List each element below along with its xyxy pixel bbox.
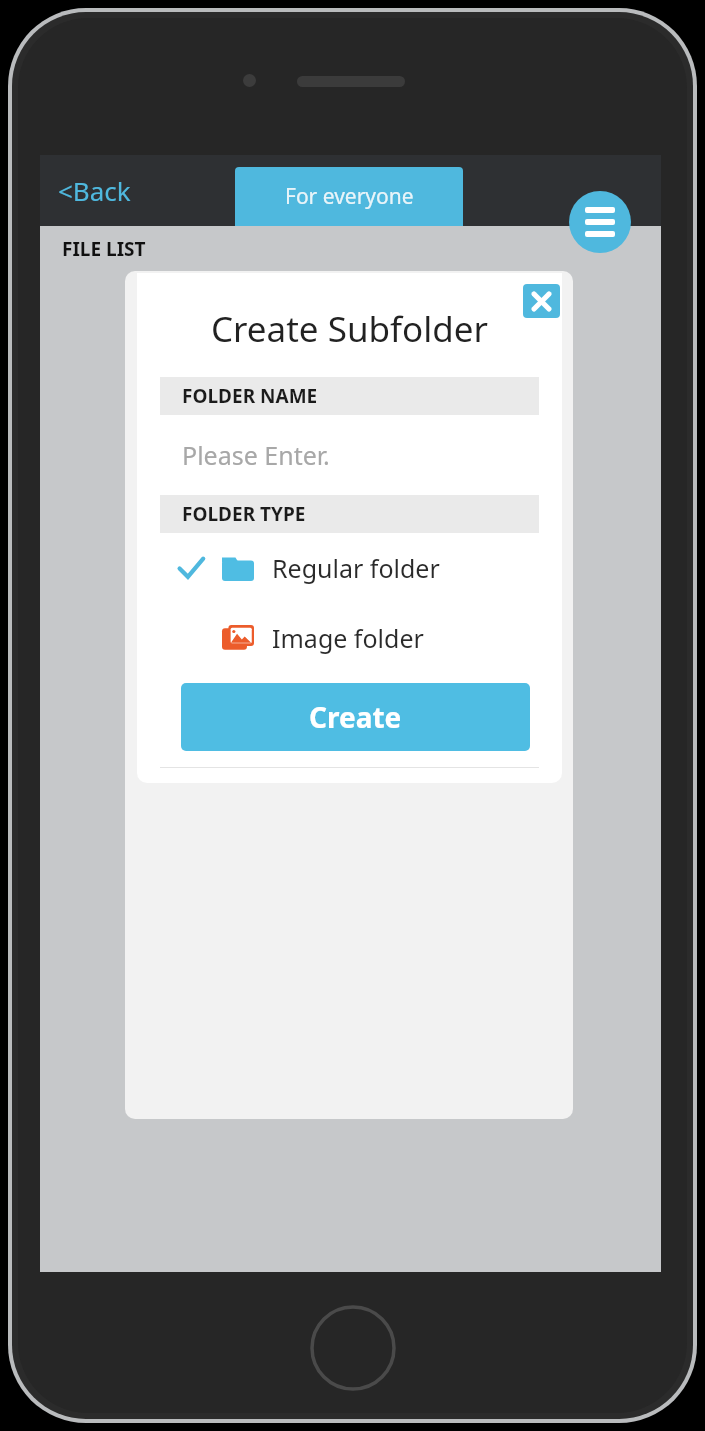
button[interactable]: For everyone — [235, 167, 463, 226]
staticText: FILE LIST — [62, 236, 146, 262]
button[interactable]: Menu — [569, 191, 631, 253]
staticText: Create — [309, 698, 402, 736]
button[interactable]: Create — [181, 683, 530, 751]
button[interactable]: Image folder — [160, 603, 539, 673]
staticText: Please Enter. — [182, 438, 330, 472]
staticText: For everyone — [285, 182, 414, 211]
button[interactable]: Please Enter. — [160, 415, 539, 495]
staticText: Create Subfolder — [137, 305, 562, 353]
button[interactable]: Close — [523, 284, 560, 318]
staticText: Regular folder — [272, 551, 440, 585]
button[interactable]: <Back — [54, 167, 135, 214]
staticText: Image folder — [272, 621, 424, 655]
staticText: FOLDER TYPE — [182, 501, 306, 527]
staticText: <Back — [58, 173, 131, 208]
button[interactable]: Regular folder — [160, 533, 539, 603]
staticText: FOLDER NAME — [182, 383, 318, 409]
